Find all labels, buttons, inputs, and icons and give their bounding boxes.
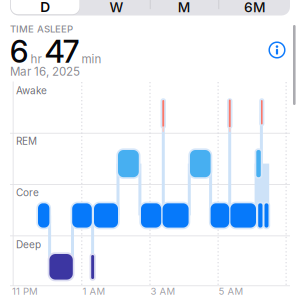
staticText: W xyxy=(109,0,123,16)
staticText: 1 AM xyxy=(82,285,105,297)
staticText: 5 AM xyxy=(218,285,243,297)
staticText: REM xyxy=(16,135,37,147)
staticText: 6 xyxy=(10,33,28,70)
button[interactable]: W xyxy=(83,0,149,16)
staticText: 6M xyxy=(244,0,266,16)
staticText: D xyxy=(40,0,50,15)
staticText: 47 xyxy=(45,33,79,70)
staticText: Deep xyxy=(16,238,41,251)
staticText: Mar 16, 2025 xyxy=(10,65,80,79)
staticText: hr xyxy=(30,52,41,66)
staticText: 3 AM xyxy=(150,285,175,297)
staticText: min xyxy=(81,52,101,66)
staticText: M xyxy=(178,0,191,16)
staticText: Core xyxy=(16,186,39,199)
staticText: Awake xyxy=(16,84,47,97)
staticText: 11 PM xyxy=(12,285,38,297)
staticText: TIME ASLEEP xyxy=(10,23,73,35)
button[interactable]: About Sleep xyxy=(267,40,287,60)
button[interactable]: D xyxy=(10,0,80,15)
button[interactable]: 6M xyxy=(222,0,288,16)
button[interactable]: M xyxy=(151,0,217,16)
